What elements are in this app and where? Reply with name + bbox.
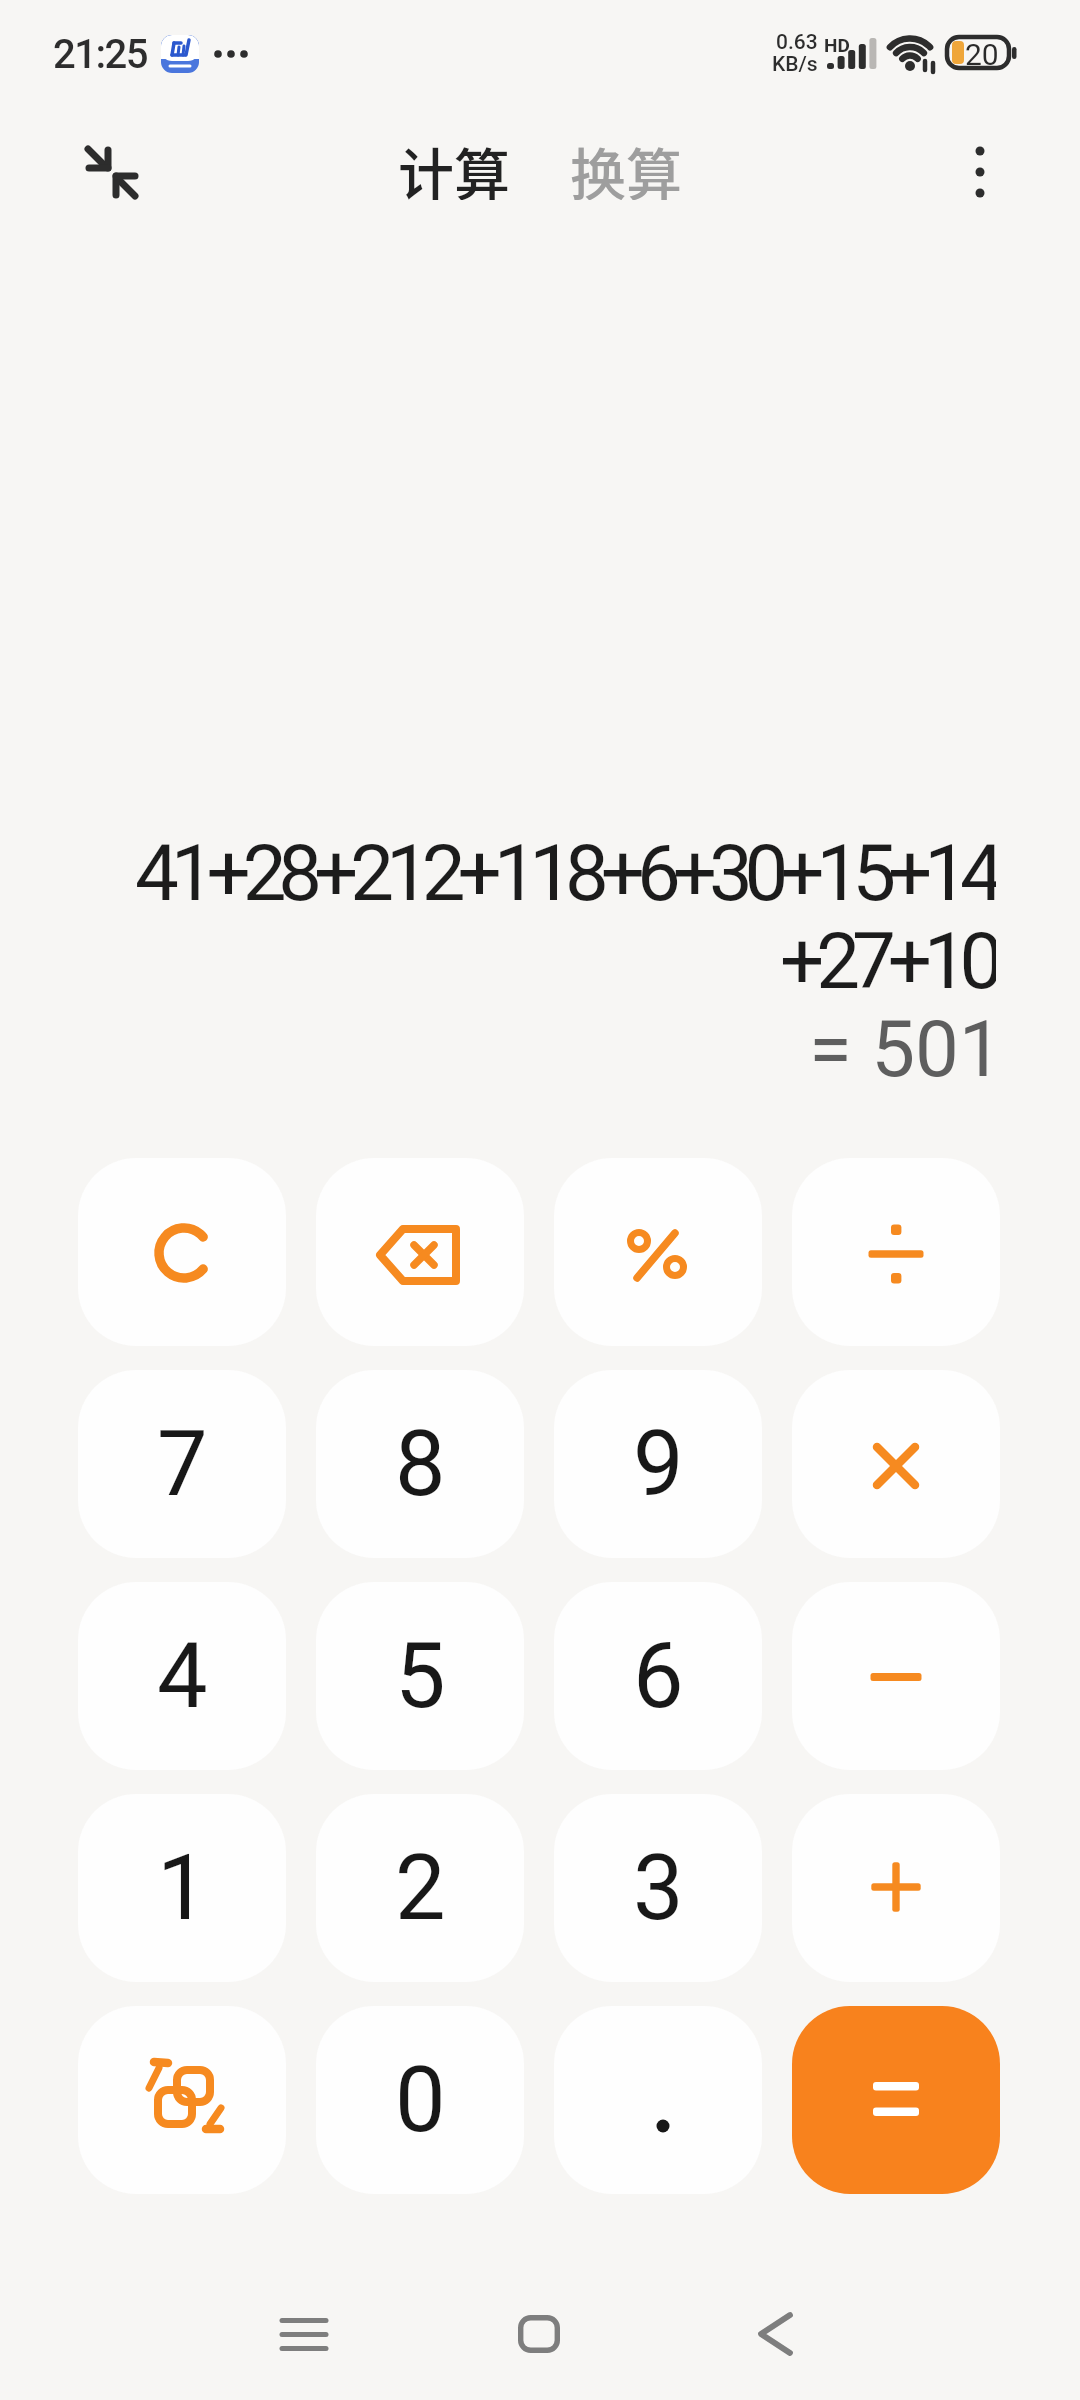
button[interactable] — [792, 1794, 1000, 1982]
button[interactable] — [78, 1158, 286, 1346]
button[interactable] — [506, 2301, 572, 2367]
button[interactable]: 2 — [316, 1794, 524, 1982]
staticText: 9 — [633, 1412, 684, 1517]
staticText: 41+28+212+118+6+30+15+14 — [135, 828, 996, 916]
staticText: 3 — [633, 1836, 684, 1941]
staticText: 0 — [395, 2048, 446, 2153]
staticText: 7 — [157, 1412, 208, 1517]
button[interactable]: 0 — [316, 2006, 524, 2194]
staticText: 5 — [395, 1624, 446, 1729]
button[interactable]: 7 — [78, 1370, 286, 1558]
staticText: 2 — [395, 1836, 446, 1941]
staticText: 4 — [157, 1624, 208, 1729]
button[interactable]: 1 — [78, 1794, 286, 1982]
button[interactable]: 9 — [554, 1370, 762, 1558]
button[interactable] — [792, 1158, 1000, 1346]
staticText: 1 — [157, 1836, 208, 1941]
staticText: KB/s — [772, 52, 818, 74]
button[interactable] — [78, 138, 146, 206]
staticText: 21:25 — [53, 31, 148, 78]
staticText: 6 — [633, 1624, 684, 1729]
staticText: = 501 — [809, 1004, 1003, 1092]
button[interactable] — [792, 1582, 1000, 1770]
button[interactable] — [950, 138, 1010, 206]
staticText: 计算 — [398, 130, 510, 200]
staticText: 换算 — [570, 130, 682, 200]
button[interactable] — [554, 2006, 762, 2194]
button[interactable] — [792, 1370, 1000, 1558]
staticText: 20 — [965, 37, 999, 68]
staticText: 8 — [395, 1412, 446, 1517]
button[interactable]: 5 — [316, 1582, 524, 1770]
button[interactable]: 6 — [554, 1582, 762, 1770]
staticText: HD — [824, 34, 850, 52]
button[interactable]: 8 — [316, 1370, 524, 1558]
button[interactable]: 换算 — [570, 130, 682, 200]
button[interactable] — [78, 2006, 286, 2194]
staticText: 0.63 — [776, 30, 818, 52]
button[interactable] — [271, 2301, 337, 2367]
button[interactable] — [742, 2301, 808, 2367]
button[interactable] — [316, 1158, 524, 1346]
button[interactable]: 4 — [78, 1582, 286, 1770]
button[interactable] — [554, 1158, 762, 1346]
staticText: +27+10 — [780, 916, 996, 1004]
button[interactable]: 计算 — [398, 130, 510, 200]
button[interactable]: 3 — [554, 1794, 762, 1982]
button[interactable] — [792, 2006, 1000, 2194]
